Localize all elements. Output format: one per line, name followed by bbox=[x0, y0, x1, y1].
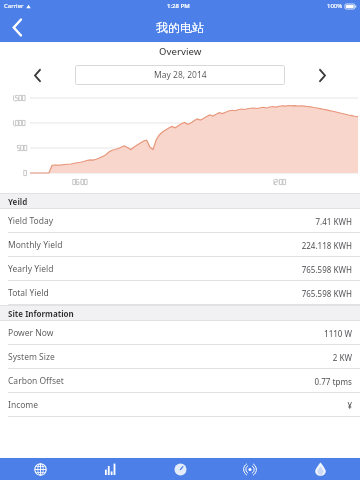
staticText: Carbon Offset bbox=[8, 375, 64, 387]
button[interactable]: Previous day bbox=[0, 60, 75, 90]
staticText: 100% bbox=[327, 2, 343, 10]
button[interactable]: Next day bbox=[285, 60, 360, 90]
staticText: Yield Today bbox=[8, 215, 54, 227]
button[interactable]: Total Yield bbox=[0, 281, 360, 305]
button[interactable]: Signal bbox=[220, 458, 280, 480]
staticText: 2 KW bbox=[332, 352, 352, 363]
button[interactable]: Carbon Offset bbox=[0, 369, 360, 393]
staticText: Power Now bbox=[8, 327, 54, 339]
staticText: ¥ bbox=[347, 400, 352, 411]
button[interactable]: Yearly Yield bbox=[0, 257, 360, 281]
staticText: Carrier bbox=[4, 2, 24, 10]
button[interactable]: Sites bbox=[10, 458, 70, 480]
staticText: 765.598 KWH bbox=[301, 264, 352, 275]
staticText: System Size bbox=[8, 351, 55, 363]
button[interactable]: Statistics bbox=[80, 458, 140, 480]
staticText: Overview bbox=[159, 45, 202, 58]
button[interactable]: Energy bbox=[290, 458, 350, 480]
staticText: 0.77 tpms bbox=[314, 376, 352, 387]
staticText: 224.118 KWH bbox=[301, 240, 352, 251]
staticText: 7.41 KWH bbox=[315, 216, 352, 227]
staticText: Total Yield bbox=[8, 287, 49, 299]
staticText: Income bbox=[8, 399, 39, 411]
button[interactable]: Back bbox=[0, 12, 34, 42]
staticText: Monthly Yield bbox=[8, 239, 63, 251]
staticText: 765.598 KWH bbox=[301, 288, 352, 299]
staticText: Yeild bbox=[8, 196, 28, 207]
button[interactable]: System Size bbox=[0, 345, 360, 369]
staticText: Site Information bbox=[8, 308, 74, 319]
button[interactable]: Income bbox=[0, 393, 360, 417]
staticText: May 28, 2014 bbox=[154, 69, 207, 81]
staticText: Yearly Yield bbox=[8, 263, 54, 275]
staticText: 1110 W bbox=[324, 328, 352, 339]
button[interactable]: Yield Today bbox=[0, 209, 360, 233]
button[interactable]: Monthly Yield bbox=[0, 233, 360, 257]
staticText: 我的电站 bbox=[156, 20, 204, 35]
staticText: 1:28 PM bbox=[167, 2, 190, 10]
button[interactable]: Monitor bbox=[150, 458, 210, 480]
button[interactable]: May 28, 2014 bbox=[75, 65, 285, 85]
button[interactable]: Power Now bbox=[0, 321, 360, 345]
